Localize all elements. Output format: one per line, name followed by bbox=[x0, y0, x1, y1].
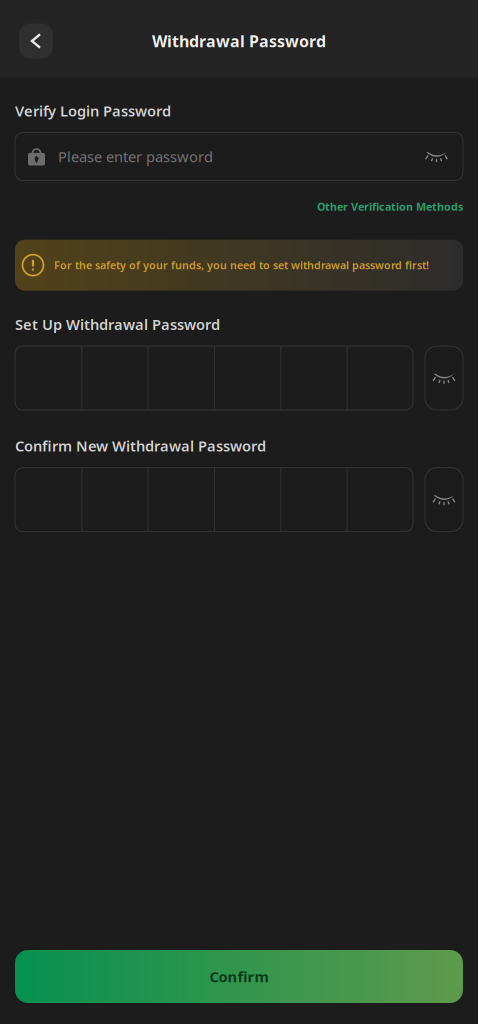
staticText: Withdrawal Password bbox=[152, 30, 326, 52]
button[interactable]: Back bbox=[19, 23, 53, 58]
button[interactable]: Confirm bbox=[15, 950, 463, 1003]
staticText: Set Up Withdrawal Password bbox=[15, 315, 220, 334]
staticText: Other Verification Methods bbox=[317, 199, 463, 214]
button[interactable]: Other Verification Methods bbox=[317, 199, 463, 214]
staticText: For the safety of your funds, you need t… bbox=[54, 258, 429, 272]
staticText: Verify Login Password bbox=[15, 101, 171, 120]
staticText: Please enter password bbox=[58, 147, 213, 166]
button[interactable]: Show password bbox=[425, 150, 448, 163]
staticText: Confirm New Withdrawal Password bbox=[15, 436, 266, 456]
button[interactable]: Show password bbox=[425, 346, 463, 410]
button[interactable]: Show password bbox=[425, 468, 463, 532]
staticText: Confirm bbox=[209, 967, 268, 986]
